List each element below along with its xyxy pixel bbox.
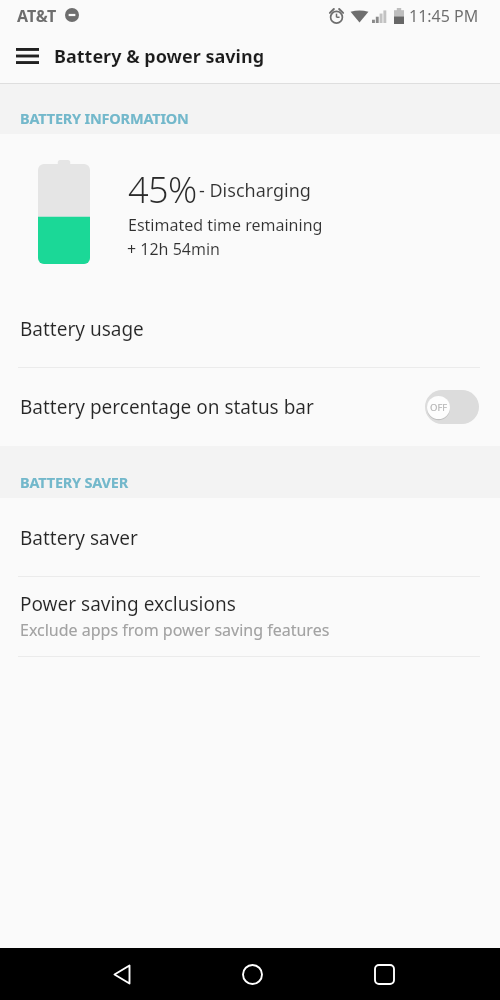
button[interactable]: Battery percentage on status bar	[0, 368, 500, 446]
staticText: + 12h 54min	[127, 238, 220, 260]
staticText: Battery usage	[20, 316, 144, 342]
staticText: Power saving exclusions	[20, 591, 236, 617]
staticText: AT&T	[17, 5, 57, 27]
button[interactable]: Battery percentage on status bar, off	[425, 390, 479, 424]
button[interactable]: Battery saver	[0, 498, 500, 576]
staticText: Estimated time remaining	[128, 214, 323, 236]
button[interactable]: Back	[96, 948, 148, 1000]
button[interactable]: Power saving exclusions	[0, 576, 500, 656]
staticText: Exclude apps from power saving features	[20, 619, 330, 641]
staticText: BATTERY INFORMATION	[20, 108, 189, 128]
button[interactable]: Recent apps	[358, 948, 410, 1000]
staticText: BATTERY SAVER	[20, 472, 129, 492]
button[interactable]: Battery usage	[0, 294, 500, 367]
staticText: - Discharging	[199, 178, 311, 203]
staticText: 11:45 PM	[409, 5, 479, 27]
button[interactable]: Home	[226, 948, 278, 1000]
button[interactable]: Open navigation menu	[4, 33, 50, 79]
staticText: Battery percentage on status bar	[20, 394, 314, 420]
staticText: Battery saver	[20, 525, 138, 551]
staticText: OFF	[430, 401, 448, 414]
staticText: 45%	[128, 165, 197, 214]
staticText: Battery & power saving	[54, 44, 265, 69]
